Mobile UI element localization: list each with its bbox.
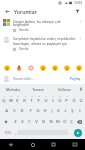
button[interactable]: 3 (14, 93, 21, 105)
button[interactable]: Yorum ekle... (0, 73, 85, 84)
staticText: 6 (38, 95, 40, 98)
staticText: J (51, 108, 53, 114)
staticText: Y (37, 98, 40, 104)
staticText: 2 (10, 95, 12, 98)
staticText: Gerçekten faydalı bir video, teşekkürler (13, 36, 76, 41)
button[interactable]: L (62, 105, 69, 116)
staticText: A (5, 108, 8, 114)
button[interactable]: Voice input (77, 84, 85, 93)
staticText: Gezgin Ayhan, bu videoyu çok beğendim (13, 19, 77, 27)
button[interactable]: G (34, 105, 41, 116)
button[interactable]: Emoji (26, 63, 35, 72)
button[interactable]: H (41, 105, 48, 116)
button[interactable]: J (48, 105, 55, 116)
staticText: U (44, 98, 48, 104)
staticText: Tamam (32, 87, 44, 91)
button[interactable]: Gezgin Ayhan, bu videoyu çok beğendim (0, 16, 85, 33)
button[interactable]: Keyboard (64, 139, 85, 150)
button[interactable]: Emoji (14, 63, 23, 72)
button[interactable]: Home (22, 139, 43, 150)
button[interactable]: C (26, 116, 33, 127)
staticText: Z (14, 119, 17, 125)
button[interactable]: Merhaba (0, 84, 25, 93)
staticText: S (13, 108, 16, 114)
button[interactable]: M (54, 116, 61, 127)
staticText: 8 (52, 95, 54, 98)
button[interactable]: Z (11, 116, 19, 127)
button[interactable]: 1 (1, 93, 7, 105)
button[interactable]: 8 (49, 93, 56, 105)
button[interactable]: Ö (61, 116, 68, 127)
staticText: Yorum ekle... (13, 76, 69, 81)
button[interactable]: Paylaş (69, 75, 82, 82)
staticText: 7 (45, 95, 47, 98)
staticText: B (42, 119, 45, 125)
staticText: N (49, 119, 53, 125)
button[interactable]: A (2, 105, 10, 116)
button[interactable]: 9 (56, 93, 63, 105)
button[interactable]: 7 (42, 93, 49, 105)
staticText: D (20, 108, 24, 114)
button[interactable]: More options (78, 36, 83, 41)
button[interactable]: More options (78, 19, 83, 24)
staticText: Ş (71, 108, 74, 114)
button[interactable]: Back (0, 139, 22, 150)
button[interactable]: S (10, 105, 18, 116)
button[interactable]: Tamam (25, 84, 51, 93)
button[interactable]: I (76, 105, 83, 116)
button[interactable]: Shift (1, 116, 11, 127)
button[interactable]: Ğ (70, 93, 77, 105)
staticText: hazırlayan, elinize ve paylaşım için (13, 41, 68, 46)
staticText: Merhaba (6, 87, 20, 91)
button[interactable]: Ü (77, 93, 84, 105)
staticText: Ğ (72, 98, 76, 104)
staticText: Yanıtla (19, 47, 29, 51)
staticText: G (36, 108, 40, 114)
staticText: Ü (79, 98, 83, 104)
button[interactable]: Emoji (50, 63, 59, 72)
staticText: 5 (31, 95, 33, 98)
button[interactable]: V (33, 116, 40, 127)
button[interactable]: Back (3, 7, 11, 15)
button[interactable]: X (19, 116, 26, 127)
button[interactable]: 2 (7, 93, 14, 105)
button[interactable]: N (47, 116, 54, 127)
button[interactable]: B (40, 116, 47, 127)
staticText: , (15, 130, 16, 135)
button[interactable]: D (18, 105, 26, 116)
button[interactable]: Emoji (74, 63, 83, 72)
button[interactable]: F (26, 105, 34, 116)
button[interactable]: Send (74, 129, 82, 137)
staticText: ?123 (4, 131, 11, 135)
button[interactable]: Emoji (2, 63, 11, 72)
staticText: I (52, 98, 54, 104)
staticText: W (9, 98, 13, 104)
button[interactable]: Emoji (38, 63, 47, 72)
button[interactable]: Ş (69, 105, 76, 116)
staticText: F (29, 108, 32, 114)
staticText: Q (2, 98, 6, 104)
staticText: E (16, 98, 19, 104)
button[interactable]: Period (68, 127, 72, 138)
staticText: Yorumlar (14, 8, 37, 15)
button[interactable]: 4 (21, 93, 28, 105)
button[interactable]: Ç (68, 116, 75, 127)
button[interactable]: ?123 (2, 127, 13, 138)
button[interactable]: Comma (13, 127, 17, 138)
button[interactable]: Kullanıcı (51, 84, 77, 93)
staticText: C (28, 119, 31, 125)
button[interactable]: Recent apps (43, 139, 64, 150)
staticText: 9 (59, 95, 61, 98)
button[interactable]: Backspace (75, 116, 84, 127)
button[interactable]: Gerçekten faydalı bir video, teşekkürler (0, 33, 85, 52)
button[interactable]: 6 (35, 93, 42, 105)
staticText: 0 (66, 95, 68, 98)
button[interactable]: K (55, 105, 62, 116)
button[interactable]: Filter (73, 7, 82, 16)
staticText: P (65, 98, 68, 104)
staticText: H (43, 108, 47, 114)
button[interactable]: Emoji (62, 63, 71, 72)
button[interactable]: 5 (28, 93, 35, 105)
button[interactable]: 0 (63, 93, 70, 105)
